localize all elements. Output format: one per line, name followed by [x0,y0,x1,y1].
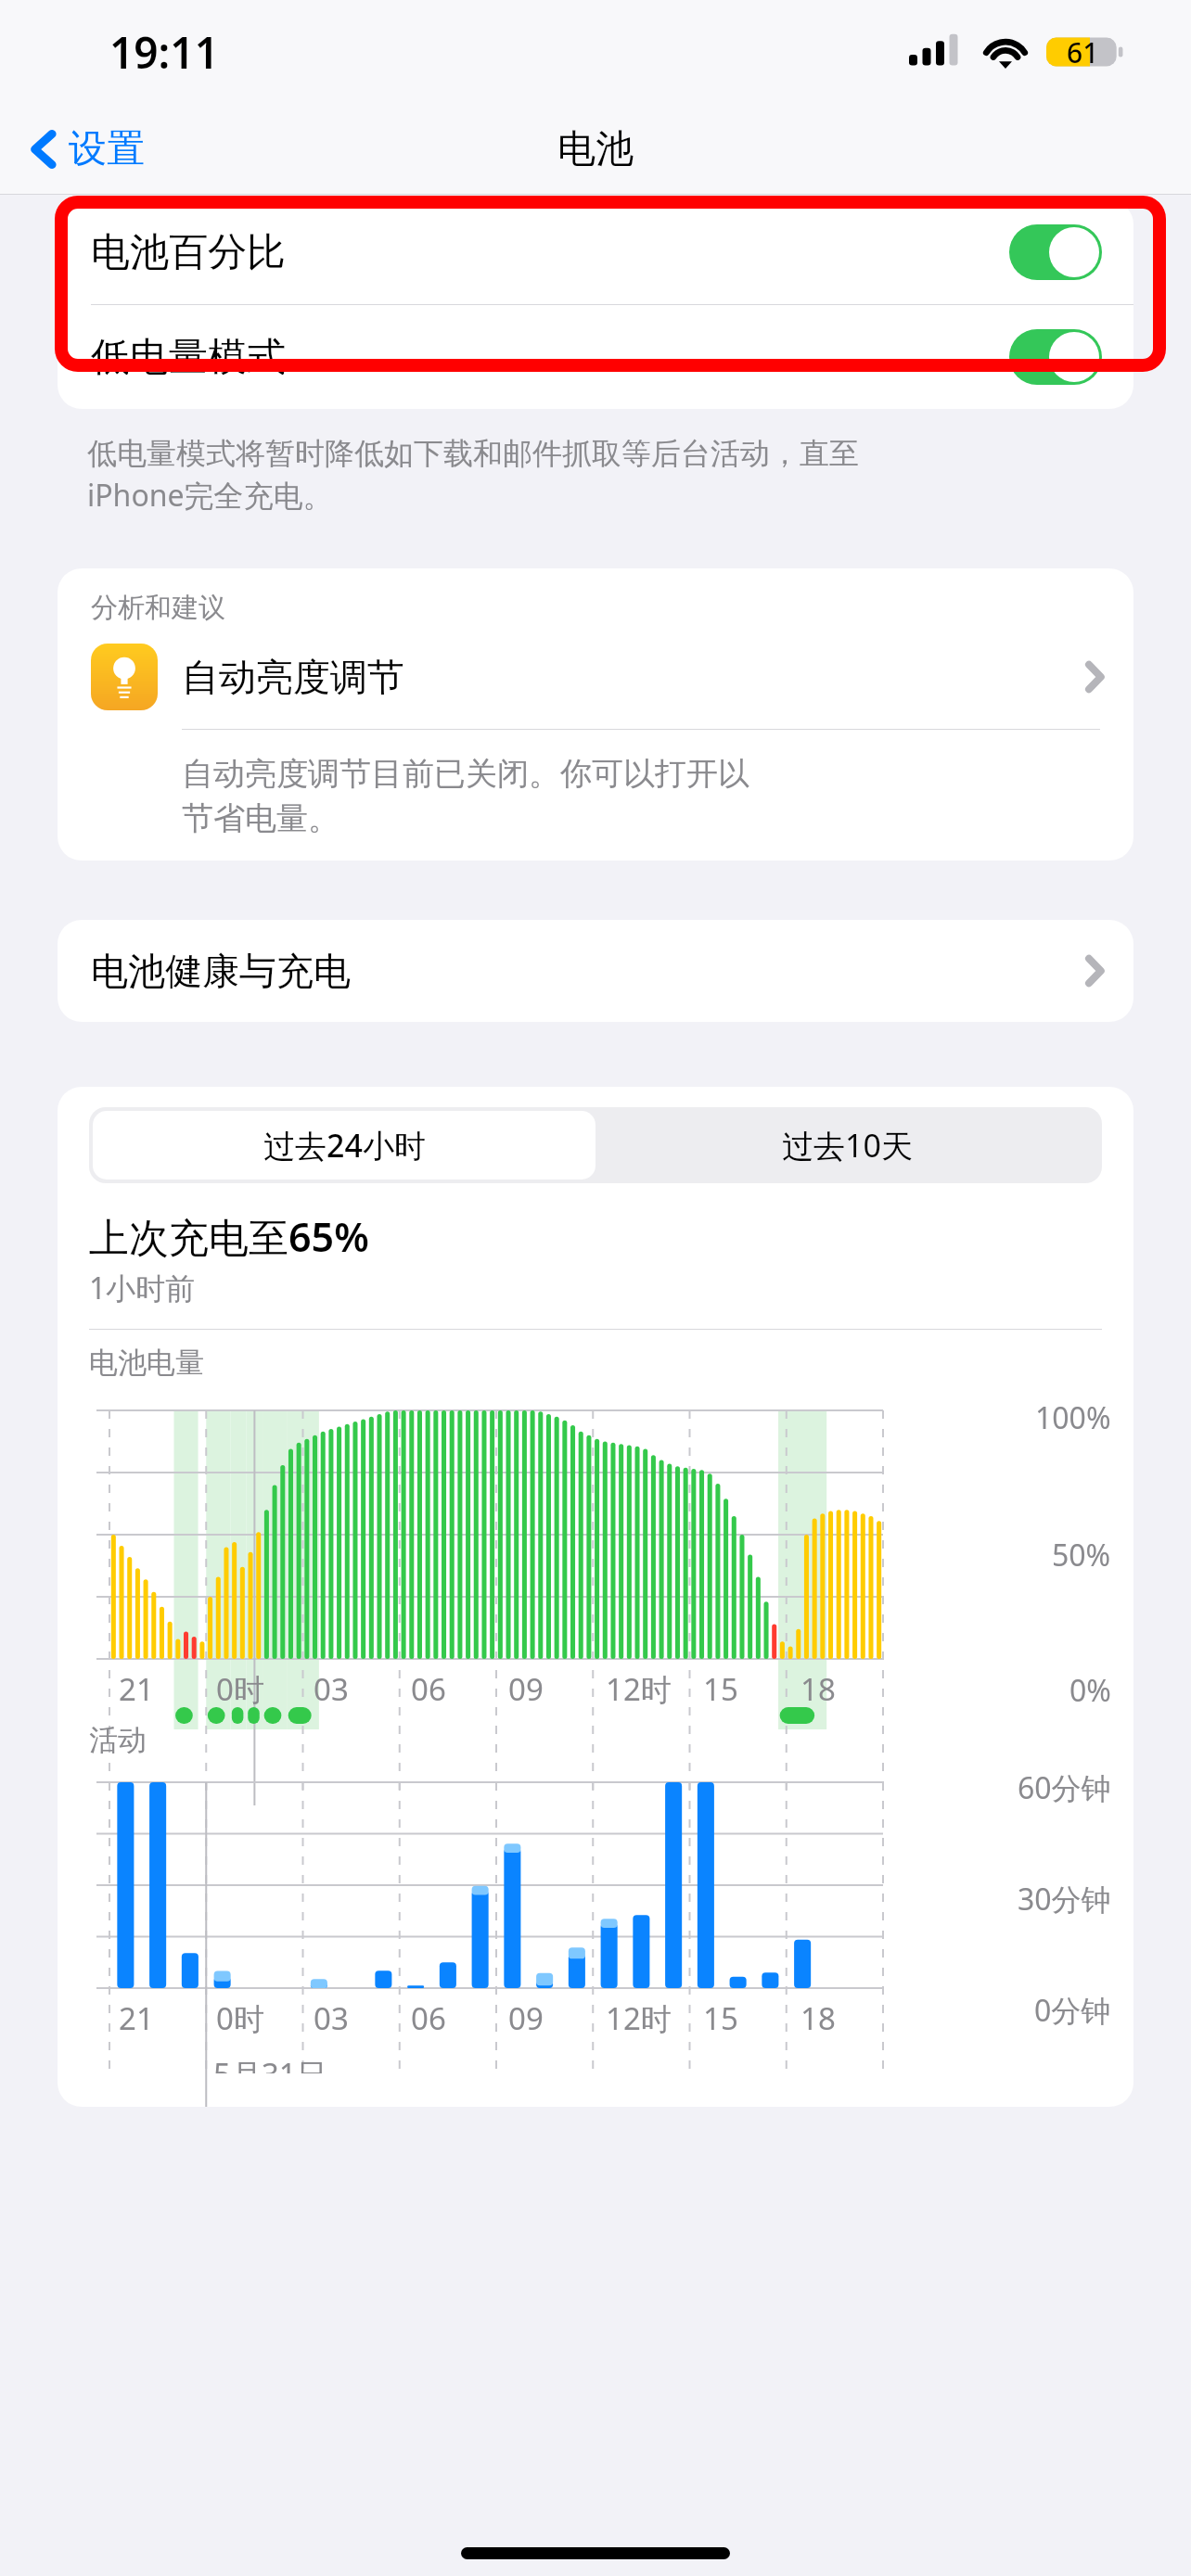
staticText: 0% [1069,1670,1111,1711]
staticText: 上次充电至65% [89,1209,369,1264]
staticText: 03 [314,1997,349,2039]
staticText: 1小时前 [89,1268,196,1308]
staticText: 15 [703,1997,738,2039]
button[interactable]: 电池百分比 开关 [1009,224,1102,280]
staticText: 活动 [89,1722,147,1758]
staticText: 12时 [606,1668,672,1705]
button[interactable]: 低电量模式 [58,305,1133,409]
staticText: 21 [119,1997,154,2039]
button[interactable]: 过去10天 [595,1111,1098,1180]
staticText: 过去24小时 [263,1124,426,1167]
staticText: 过去10天 [782,1124,913,1167]
staticText: 100% [1035,1397,1111,1438]
staticText: 设置 [69,125,145,173]
staticText: 低电量模式 [91,333,1009,382]
staticText: 06 [411,1997,446,2039]
staticText: 21 [119,1668,154,1705]
staticText: 分析和建议 [91,591,225,625]
button[interactable]: 低电量模式 开关 [1009,329,1102,385]
staticText: 60分钟 [1018,1767,1111,1808]
staticText: 电池电量 [89,1345,204,1381]
staticText: 自动亮度调节目前已关闭。你可以打开以 节省电量。 [182,754,749,838]
staticText: 0时 [216,1668,264,1705]
staticText: 5月31日 [213,2053,327,2073]
staticText: 15 [703,1668,738,1705]
staticText: 电池健康与充电 [91,948,1085,994]
staticText: 09 [508,1997,544,2039]
staticText: 电池 [557,125,634,173]
staticText: 低电量模式将暂时降低如下载和邮件抓取等后台活动，直至 iPhone完全充电。 [87,435,859,515]
staticText: 电池百分比 [91,228,1009,277]
staticText: 61 [1067,33,1099,71]
staticText: 09 [508,1668,544,1705]
button[interactable]: 自动亮度调节 [58,625,1133,729]
staticText: 50% [1052,1535,1111,1575]
staticText: 12时 [606,1997,672,2039]
staticText: 18 [800,1997,836,2039]
staticText: 06 [411,1668,446,1705]
staticText: 0分钟 [1034,1990,1111,2031]
button[interactable]: 电池健康与充电 [58,920,1133,1022]
staticText: 自动亮度调节 [182,654,1085,700]
staticText: 18 [800,1668,836,1705]
button[interactable]: 过去24小时 [93,1111,595,1180]
staticText: 19:11 [109,23,219,82]
staticText: 0时 [216,1997,264,2039]
button[interactable]: 电池百分比 [58,200,1133,304]
button[interactable]: 设置 [24,118,152,181]
staticText: 03 [314,1668,349,1705]
staticText: 30分钟 [1018,1879,1111,1919]
